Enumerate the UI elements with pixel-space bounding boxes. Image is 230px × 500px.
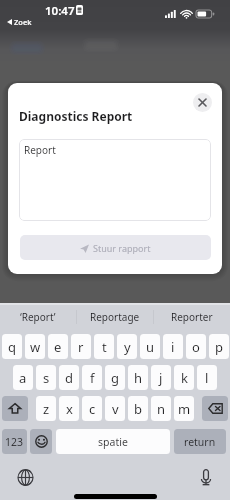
staticText: m — [178, 400, 191, 418]
button[interactable]: Shift — [2, 396, 28, 421]
button[interactable]: q — [2, 334, 22, 359]
staticText: ‘Report’ — [20, 310, 56, 324]
button[interactable]: z — [36, 396, 56, 421]
staticText: a — [19, 369, 27, 387]
staticText: w — [30, 338, 41, 356]
staticText: n — [157, 400, 166, 418]
button[interactable]: w — [25, 334, 45, 359]
staticText: g — [111, 369, 119, 387]
staticText: q — [8, 338, 16, 356]
button[interactable]: d — [59, 365, 79, 390]
button[interactable]: Reportage — [77, 303, 153, 330]
button[interactable]: l — [197, 365, 217, 390]
staticText: l — [205, 369, 209, 387]
button[interactable]: Report — [19, 139, 211, 221]
button[interactable]: u — [140, 334, 160, 359]
button[interactable]: b — [128, 396, 148, 421]
staticText: 123 — [5, 435, 24, 449]
button[interactable]: 123 — [2, 429, 27, 454]
button[interactable]: s — [36, 365, 56, 390]
staticText: f — [90, 369, 95, 387]
staticText: return — [184, 435, 216, 449]
button[interactable]: c — [82, 396, 102, 421]
button[interactable]: Emoji — [30, 429, 52, 454]
staticText: s — [43, 369, 50, 387]
staticText: Diagnostics Report — [19, 108, 133, 124]
staticText: d — [65, 369, 73, 387]
staticText: Reporter — [171, 310, 213, 324]
button[interactable]: return — [174, 429, 226, 454]
staticText: r — [78, 338, 84, 356]
button[interactable]: k — [174, 365, 194, 390]
button[interactable]: r — [71, 334, 91, 359]
button[interactable]: a — [13, 365, 33, 390]
button[interactable]: spatie — [56, 429, 170, 454]
staticText: i — [171, 338, 175, 356]
button[interactable]: x — [59, 396, 79, 421]
staticText: 10:47 — [45, 3, 75, 19]
staticText: u — [146, 338, 155, 356]
staticText: Stuur rapport — [93, 242, 151, 254]
button[interactable]: h — [128, 365, 148, 390]
button[interactable]: Reporter — [154, 303, 230, 330]
button[interactable]: y — [117, 334, 137, 359]
staticText: x — [66, 400, 73, 418]
button[interactable]: t — [94, 334, 114, 359]
button[interactable]: Back to Zoek — [7, 17, 32, 27]
staticText: p — [215, 338, 223, 356]
staticText: k — [181, 369, 188, 387]
button[interactable]: v — [105, 396, 125, 421]
staticText: z — [43, 400, 50, 418]
button[interactable]: Stuur rapport — [20, 235, 211, 260]
button[interactable]: i — [163, 334, 183, 359]
button[interactable]: o — [186, 334, 206, 359]
button[interactable]: Next keyboard — [14, 466, 37, 489]
staticText: b — [134, 400, 142, 418]
button[interactable]: m — [174, 396, 194, 421]
staticText: o — [192, 338, 200, 356]
button[interactable]: e — [48, 334, 68, 359]
button[interactable]: Backspace — [202, 396, 228, 421]
button[interactable]: Close — [193, 93, 212, 112]
staticText: spatie — [98, 435, 128, 449]
button[interactable]: Dictation — [194, 465, 218, 489]
staticText: y — [124, 338, 131, 356]
staticText: c — [89, 400, 96, 418]
staticText: e — [54, 338, 62, 356]
button[interactable]: ‘Report’ — [0, 303, 76, 330]
button[interactable]: g — [105, 365, 125, 390]
button[interactable]: n — [151, 396, 171, 421]
staticText: Report — [24, 143, 56, 157]
staticText: v — [112, 400, 119, 418]
staticText: t — [102, 338, 107, 356]
button[interactable]: j — [151, 365, 171, 390]
button[interactable]: f — [82, 365, 102, 390]
staticText: j — [159, 369, 163, 387]
button[interactable]: p — [209, 334, 229, 359]
staticText: h — [134, 369, 143, 387]
staticText: Zoek — [14, 17, 32, 27]
staticText: Reportage — [90, 310, 140, 324]
